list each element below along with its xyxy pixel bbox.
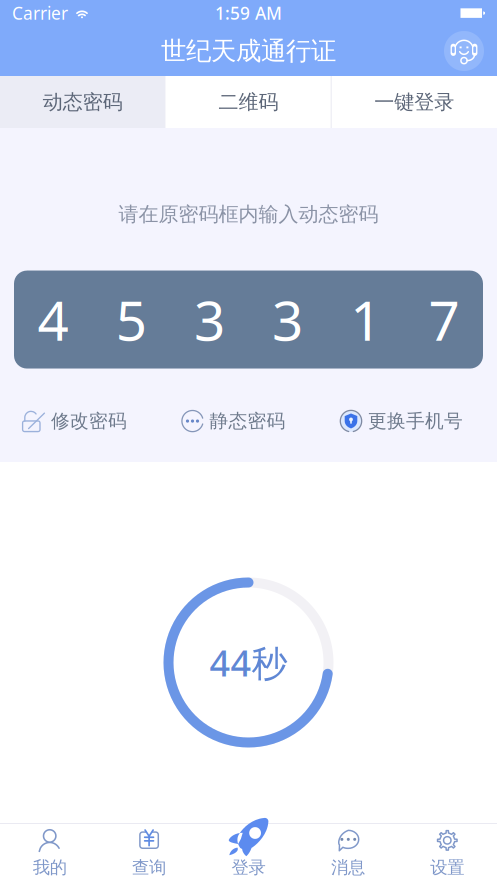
staticText: 登录 bbox=[231, 857, 265, 878]
staticText: 44秒 bbox=[209, 639, 287, 686]
staticText: 更换手机号 bbox=[368, 410, 463, 432]
staticText: 世纪天成通行证 bbox=[161, 35, 336, 66]
button[interactable]: 动态密码 bbox=[0, 76, 166, 128]
button[interactable]: 消息 bbox=[298, 823, 398, 882]
staticText: 7 bbox=[428, 283, 459, 356]
staticText: Carrier bbox=[12, 1, 68, 24]
staticText: 1 bbox=[350, 283, 381, 356]
staticText: 5 bbox=[116, 283, 147, 356]
staticText: 4 bbox=[38, 283, 69, 356]
button[interactable]: 查询 bbox=[99, 823, 199, 882]
button[interactable]: 登录 bbox=[199, 823, 298, 882]
staticText: 修改密码 bbox=[51, 410, 127, 432]
staticText: 3 bbox=[194, 283, 225, 356]
staticText: 动态密码 bbox=[43, 90, 123, 114]
staticText: 一键登录 bbox=[374, 90, 454, 114]
staticText: 3 bbox=[272, 283, 303, 356]
staticText: 查询 bbox=[132, 857, 166, 878]
staticText: 请在原密码框内输入动态密码 bbox=[118, 202, 378, 227]
button[interactable]: 在线客服 bbox=[443, 30, 485, 72]
button[interactable]: 我的 bbox=[0, 823, 99, 882]
staticText: 1:59 AM bbox=[215, 1, 282, 24]
button[interactable]: 一键登录 bbox=[331, 76, 497, 128]
staticText: 设置 bbox=[430, 857, 464, 878]
button[interactable]: 修改密码 bbox=[20, 408, 127, 435]
button[interactable]: 更换手机号 bbox=[339, 409, 463, 433]
staticText: 消息 bbox=[331, 857, 365, 878]
staticText: 二维码 bbox=[218, 90, 278, 114]
staticText: 静态密码 bbox=[209, 410, 285, 432]
button[interactable]: 二维码 bbox=[166, 76, 331, 128]
staticText: 我的 bbox=[33, 857, 67, 878]
button[interactable]: 静态密码 bbox=[180, 409, 285, 433]
button[interactable]: 设置 bbox=[398, 823, 497, 882]
